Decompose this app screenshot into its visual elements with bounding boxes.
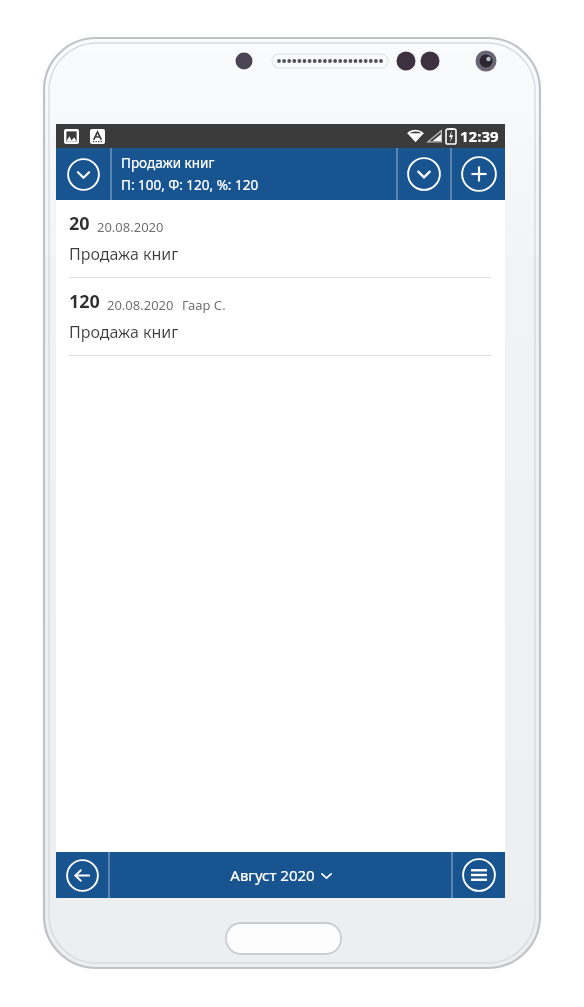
button[interactable]: Menu (453, 852, 505, 898)
button[interactable]: 20 (56, 200, 505, 277)
button[interactable]: Home (226, 923, 341, 954)
button[interactable]: Add (452, 148, 505, 200)
button[interactable]: Filter (398, 148, 450, 200)
staticText: 12:39 (460, 126, 499, 146)
staticText: 20.08.2020 (97, 218, 164, 236)
staticText: Продажа книг (69, 321, 179, 343)
staticText: 120 (69, 289, 100, 314)
button[interactable]: 120 (56, 278, 505, 355)
staticText: Август 2020 (230, 865, 315, 885)
button[interactable]: Продажи книг (112, 148, 396, 200)
staticText: Гаар С. (182, 296, 226, 314)
button[interactable]: Август 2020 (110, 852, 451, 898)
button[interactable]: Collapse (56, 148, 110, 200)
staticText: Продажи книг (121, 154, 215, 172)
staticText: Продажа книг (69, 243, 179, 265)
staticText: П: 100, Ф: 120, %: 120 (121, 176, 259, 194)
staticText: 20 (69, 211, 90, 236)
staticText: 20.08.2020 (107, 296, 174, 314)
button[interactable]: Back (56, 852, 108, 898)
